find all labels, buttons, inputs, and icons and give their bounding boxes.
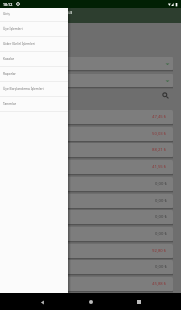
button[interactable]: HÜSEYİN YILDIZ [8,277,173,294]
staticText: Tanımlar [3,102,17,106]
button[interactable]: HASAN ARSLAN [8,244,173,261]
button[interactable]: Kasalar [0,51,68,66]
staticText: 45,88 ₺ [152,281,167,287]
staticText: Üye Borçlandırma [21,8,73,16]
button[interactable]: MUSTAFA ŞAHİN [8,177,173,194]
button[interactable]: EMİNE ÖZTÜRK [8,227,173,244]
staticText: 18:12 [3,2,13,7]
staticText: Giriş [3,12,10,16]
button[interactable]: HATİCE KOÇ [8,260,173,277]
button[interactable]: FATMA ÇELİK [8,160,173,177]
staticText: 47,45 ₺ [152,114,167,120]
staticText: Kasalar [3,57,15,61]
button[interactable]: AHMET YILMAZ [8,110,173,127]
staticText: 92,80 ₺ [152,248,167,254]
button[interactable]: Back [35,295,49,309]
button[interactable]: MEHMET DEMİR [8,127,173,144]
staticText: Üye Borçlandırma İşlemleri [3,87,44,91]
button[interactable]: ELİF AKSOY [8,294,173,310]
button[interactable]: ZEYNEP AYDIN [8,194,173,211]
button[interactable]: Recents [132,295,146,309]
staticText: 0,00 ₺ [155,198,167,204]
staticText: 0,00 ₺ [155,181,167,187]
button[interactable]: Search [160,90,171,101]
staticText: Gider (Gelir) İşlemleri [3,42,35,46]
button[interactable]: Open navigation drawer [4,10,15,21]
button[interactable]: ALİ DOĞAN [8,210,173,227]
staticText: Üye İşlemleri [3,27,23,31]
button[interactable]: Raporlar [0,66,68,81]
button[interactable] [8,74,173,89]
staticText: 88,21 ₺ [152,147,167,153]
staticText: Raporlar [3,72,16,76]
staticText: 0,00 ₺ [155,264,167,270]
button[interactable]: Giriş [0,6,68,21]
button[interactable]: Gider (Gelir) İşlemleri [0,36,68,51]
staticText: 0,00 ₺ [155,231,167,237]
button[interactable] [8,57,173,72]
button[interactable]: AYŞE KAYA [8,143,173,160]
staticText: 0,00 ₺ [155,214,167,220]
staticText: 41,55 ₺ [152,164,167,170]
staticText: 50,03 ₺ [152,131,167,137]
button[interactable]: Üye İşlemleri [0,21,68,36]
button[interactable]: Home [84,295,98,309]
button[interactable]: Tanımlar [0,96,68,111]
button[interactable]: Üye Borçlandırma İşlemleri [0,81,68,96]
